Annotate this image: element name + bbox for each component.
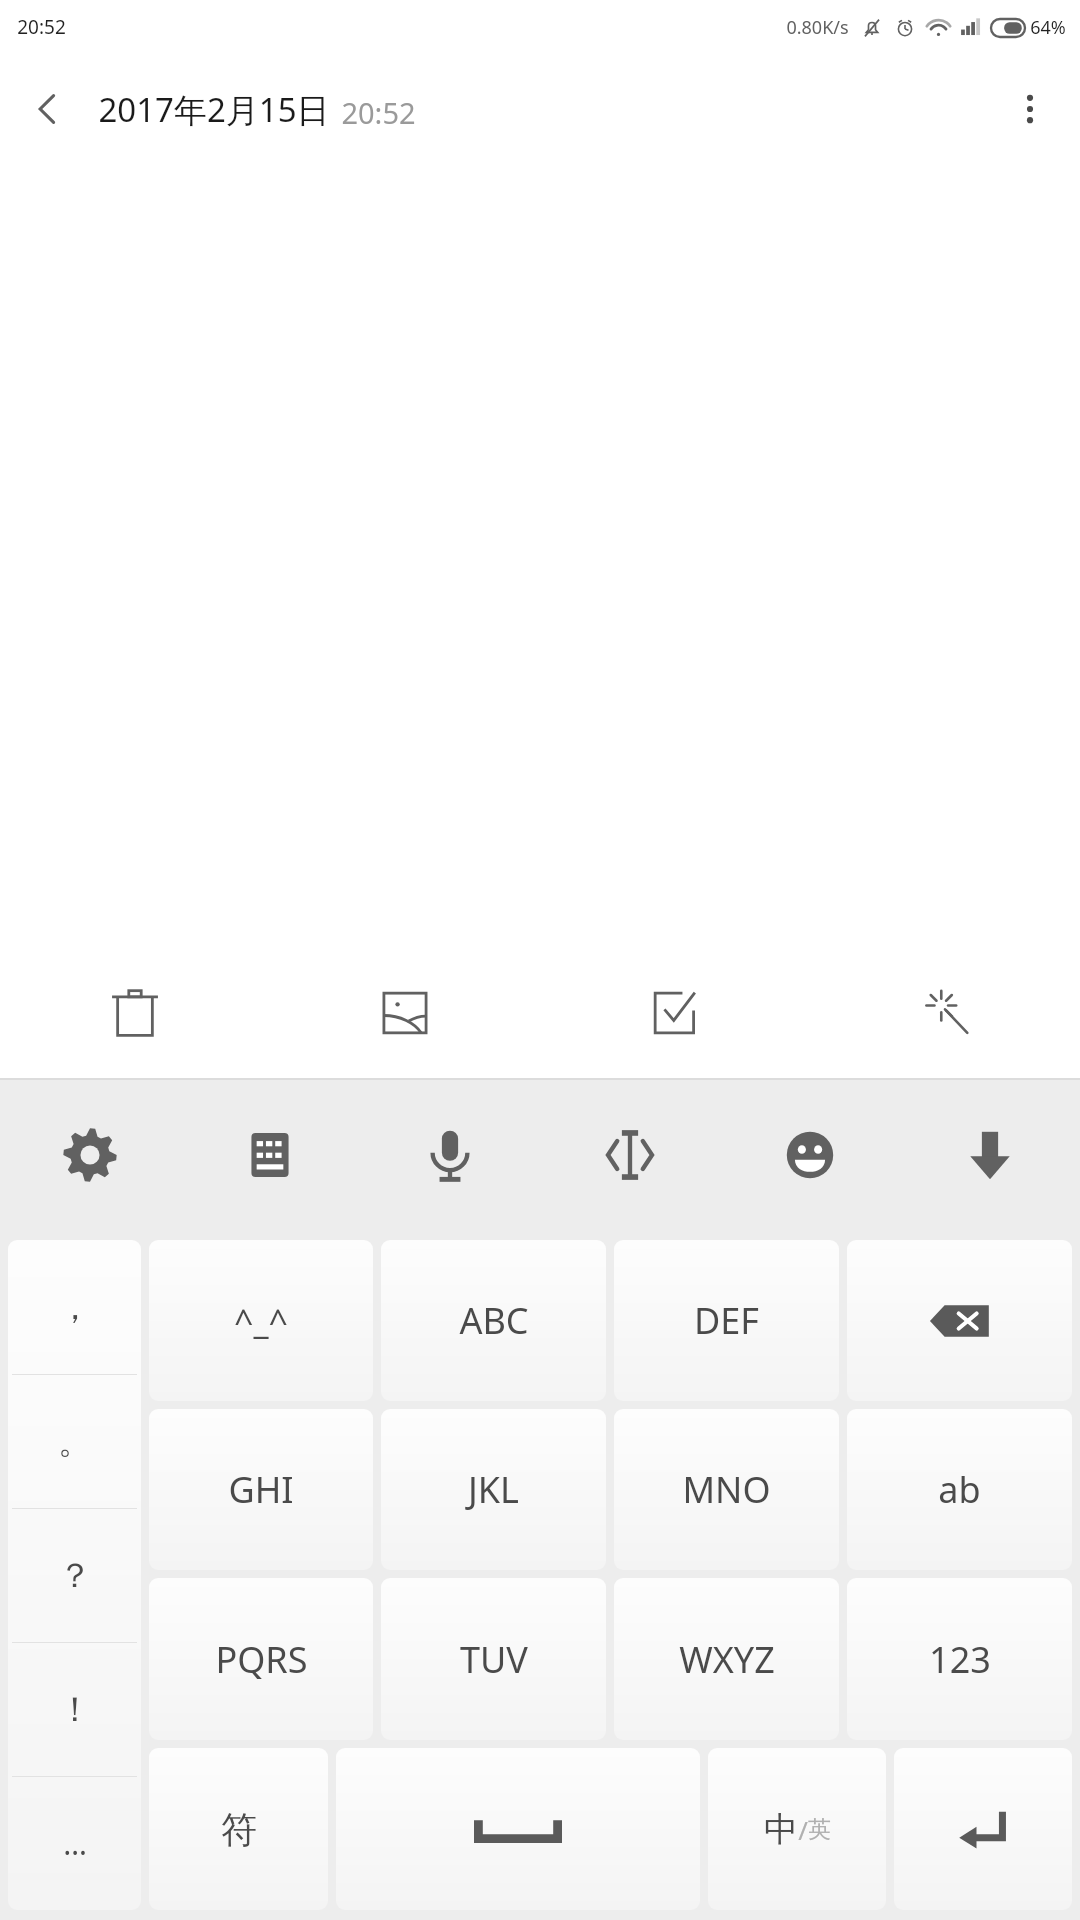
staticText: PQRS <box>215 1635 308 1684</box>
button[interactable]: Settings <box>0 1080 180 1230</box>
staticText: ， <box>58 1286 92 1329</box>
button[interactable]: Voice input <box>360 1080 540 1230</box>
staticText: 2017年2月15日 <box>98 87 330 132</box>
staticText: JKL <box>468 1465 519 1514</box>
button[interactable] <box>894 1748 1072 1910</box>
button[interactable]: ABC <box>381 1240 606 1401</box>
button[interactable]: ， <box>8 1240 141 1374</box>
staticText: 中 <box>764 1808 798 1851</box>
staticText: ^_^ <box>234 1298 288 1344</box>
button[interactable]: WXYZ <box>614 1578 839 1740</box>
button[interactable]: Delete <box>0 948 270 1078</box>
button[interactable]: 符 <box>149 1748 328 1910</box>
button[interactable]: Insert image <box>270 948 540 1078</box>
staticText: ABC <box>459 1296 529 1345</box>
staticText: … <box>63 1823 87 1864</box>
button[interactable]: ？ <box>8 1509 141 1642</box>
staticText: ab <box>938 1465 981 1514</box>
staticText: 64% <box>1030 15 1066 40</box>
button[interactable]: JKL <box>381 1409 606 1570</box>
button[interactable]: TUV <box>381 1578 606 1740</box>
button[interactable]: Back <box>20 81 76 137</box>
staticText: 0.80K/s <box>786 15 849 40</box>
staticText: GHI <box>228 1465 294 1514</box>
button[interactable]: ab <box>847 1409 1072 1570</box>
button[interactable]: 中 <box>708 1748 886 1910</box>
staticText: WXYZ <box>679 1635 775 1684</box>
button[interactable]: PQRS <box>149 1578 373 1740</box>
button[interactable]: ^_^ <box>149 1240 373 1401</box>
button[interactable]: 123 <box>847 1578 1072 1740</box>
button[interactable] <box>336 1748 700 1910</box>
staticText: 20:52 <box>17 14 66 40</box>
button[interactable]: ！ <box>8 1643 141 1776</box>
button[interactable]: Checklist <box>540 948 810 1078</box>
staticText: 。 <box>58 1420 92 1463</box>
staticText: 123 <box>929 1635 991 1684</box>
staticText: ！ <box>58 1688 92 1731</box>
button[interactable]: … <box>8 1777 141 1910</box>
staticText: / <box>798 1812 808 1847</box>
staticText: MNO <box>682 1465 771 1514</box>
button[interactable]: GHI <box>149 1409 373 1570</box>
button[interactable]: DEF <box>614 1240 839 1401</box>
button[interactable]: 。 <box>8 1375 141 1508</box>
button[interactable]: Move cursor <box>540 1080 720 1230</box>
button[interactable]: Format <box>810 948 1080 1078</box>
staticText: 英 <box>808 1815 831 1844</box>
button[interactable] <box>847 1240 1072 1401</box>
staticText: 符 <box>221 1807 257 1852</box>
button[interactable]: More options <box>1002 81 1058 137</box>
button[interactable]: MNO <box>614 1409 839 1570</box>
staticText: DEF <box>694 1296 759 1345</box>
staticText: TUV <box>460 1635 528 1684</box>
staticText: 20:52 <box>341 93 416 132</box>
button[interactable]: Hide keyboard <box>900 1080 1080 1230</box>
button[interactable]: Emoji <box>720 1080 900 1230</box>
button[interactable]: Keyboard layout <box>180 1080 360 1230</box>
staticText: ？ <box>58 1554 92 1597</box>
